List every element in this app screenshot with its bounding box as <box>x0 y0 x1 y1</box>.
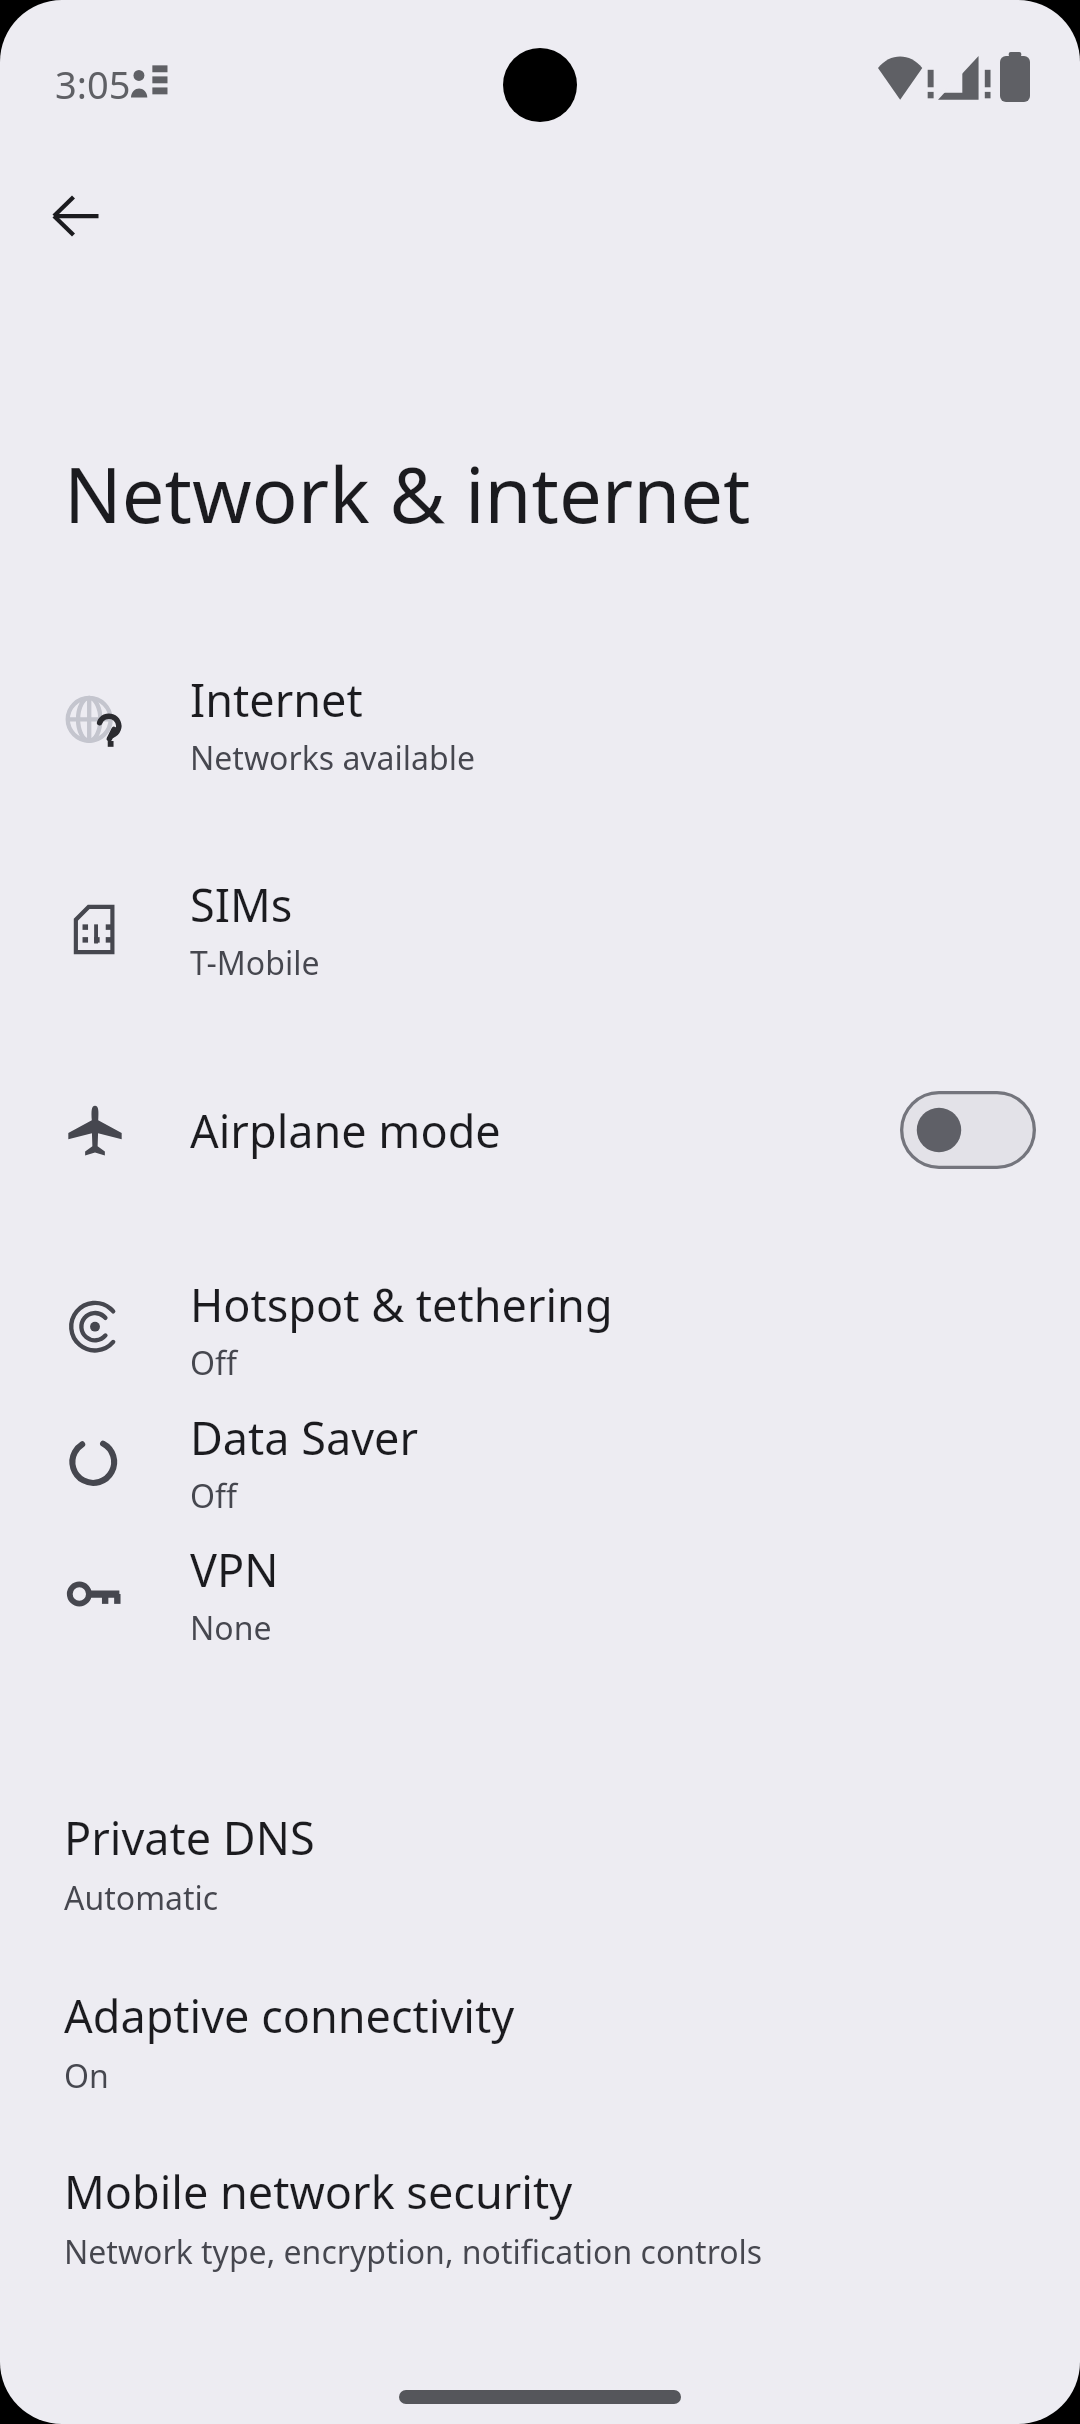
staticText: Automatic <box>64 1876 219 1920</box>
staticText: VPN <box>190 1539 279 1600</box>
button[interactable]: Hotspot & tethering <box>0 1255 1080 1403</box>
button[interactable]: SIMs <box>0 855 1080 1003</box>
staticText: Networks available <box>190 736 475 780</box>
button[interactable]: Airplane mode <box>0 1060 1080 1200</box>
button[interactable]: Data Saver <box>0 1388 1080 1536</box>
button[interactable]: VPN <box>0 1520 1080 1668</box>
staticText: Private DNS <box>64 1807 315 1868</box>
button[interactable]: Private DNS <box>0 1788 1080 1938</box>
staticText: Network type, encryption, notification c… <box>64 2230 763 2274</box>
staticText: SIMs <box>190 874 293 935</box>
staticText: On <box>64 2054 109 2098</box>
staticText: T-Mobile <box>190 941 320 985</box>
staticText: Internet <box>190 669 363 730</box>
staticText: Hotspot & tethering <box>190 1274 613 1335</box>
staticText: Off <box>190 1341 238 1385</box>
staticText: Network & internet <box>64 442 751 546</box>
staticText: Mobile network security <box>64 2161 573 2222</box>
button[interactable]: Adaptive connectivity <box>0 1966 1080 2116</box>
staticText: Data Saver <box>190 1407 419 1468</box>
staticText: Airplane mode <box>190 1100 501 1161</box>
staticText: Adaptive connectivity <box>64 1985 515 2046</box>
button[interactable]: Internet <box>0 650 1080 798</box>
staticText: Off <box>190 1474 238 1518</box>
staticText: 3:05 <box>55 58 131 110</box>
button[interactable]: Back <box>30 170 122 262</box>
staticText: None <box>190 1606 272 1650</box>
button[interactable]: Mobile network security <box>0 2142 1080 2292</box>
button[interactable]: Airplane mode toggle <box>900 1091 1036 1169</box>
